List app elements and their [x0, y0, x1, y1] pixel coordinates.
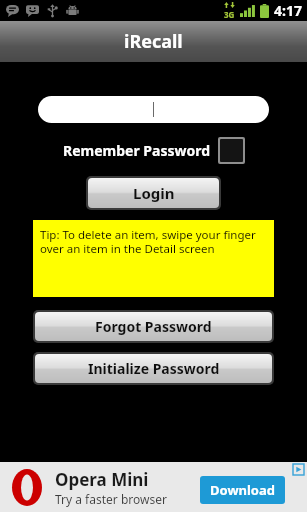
other: AdChoices	[293, 464, 304, 475]
staticText: 4:17	[274, 1, 302, 20]
staticText: iRecall	[124, 29, 183, 54]
button[interactable]: Initialize Password	[35, 354, 272, 383]
staticText: Login	[133, 183, 175, 203]
staticText: Initialize Password	[88, 359, 220, 378]
staticText: Opera Mini	[55, 468, 149, 491]
staticText: Forgot Password	[95, 317, 212, 336]
staticText: Remember Password	[63, 141, 210, 160]
button[interactable]: Opera Mini	[0, 462, 307, 512]
button[interactable]: Login	[88, 178, 219, 208]
button[interactable]: Download	[210, 481, 275, 499]
staticText: Download	[210, 481, 275, 499]
staticText: Try a faster browser	[55, 491, 167, 507]
staticText: Tip: To delete an item, swipe your finge…	[40, 227, 268, 256]
button[interactable]: Password field	[38, 96, 269, 123]
button[interactable]: Forgot Password	[35, 312, 272, 341]
staticText: 3G	[224, 9, 235, 20]
button[interactable]: Remember Password	[63, 137, 245, 164]
